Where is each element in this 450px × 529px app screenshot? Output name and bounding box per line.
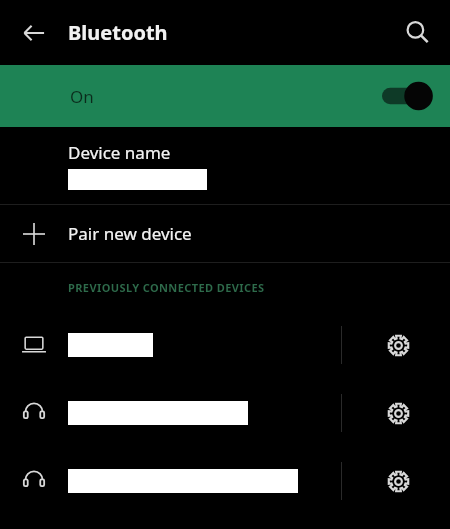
staticText: PREVIOUSLY CONNECTED DEVICES bbox=[68, 280, 265, 295]
button[interactable] bbox=[0, 447, 335, 515]
staticText: Bluetooth bbox=[68, 19, 168, 46]
button[interactable]: Search bbox=[394, 9, 442, 57]
button[interactable]: Device name bbox=[0, 127, 450, 204]
button[interactable]: Back bbox=[10, 9, 58, 57]
staticText: Pair new device bbox=[68, 222, 192, 245]
button[interactable]: Pair new device bbox=[0, 205, 450, 262]
button[interactable]: On bbox=[0, 65, 450, 127]
button[interactable] bbox=[0, 379, 335, 447]
button[interactable] bbox=[0, 311, 335, 379]
other: Bluetooth toggle bbox=[382, 79, 434, 113]
button[interactable]: Device settings bbox=[347, 379, 450, 447]
button[interactable]: Device settings bbox=[347, 447, 450, 515]
staticText: Device name bbox=[68, 141, 171, 164]
staticText: On bbox=[70, 85, 94, 108]
button[interactable]: Device settings bbox=[347, 311, 450, 379]
